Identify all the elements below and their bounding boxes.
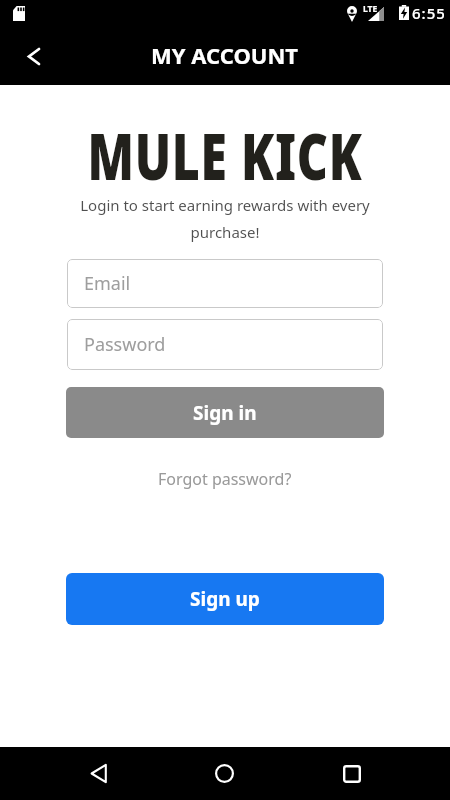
staticText: Login to start earning rewards with ever…	[80, 195, 370, 243]
button[interactable]	[76, 751, 121, 796]
button[interactable]	[202, 751, 247, 796]
staticText: Sign up	[190, 586, 260, 612]
staticText: MULE KICK	[87, 112, 363, 199]
staticText: LTE	[363, 3, 378, 15]
staticText: Email	[84, 271, 131, 296]
staticText: MY ACCOUNT	[151, 40, 299, 70]
staticText: Password	[84, 332, 166, 357]
staticText: Sign in	[193, 400, 257, 426]
staticText: Forgot password?	[158, 468, 292, 490]
button[interactable]: Forgot password?	[152, 468, 298, 490]
button[interactable]: Sign up	[66, 573, 384, 625]
button[interactable]: Sign in	[66, 387, 384, 438]
button[interactable]: Email	[67, 259, 383, 308]
button[interactable]	[329, 751, 374, 796]
button[interactable]	[18, 40, 50, 72]
staticText: 6:55	[412, 3, 446, 23]
button[interactable]: Password	[67, 319, 383, 370]
